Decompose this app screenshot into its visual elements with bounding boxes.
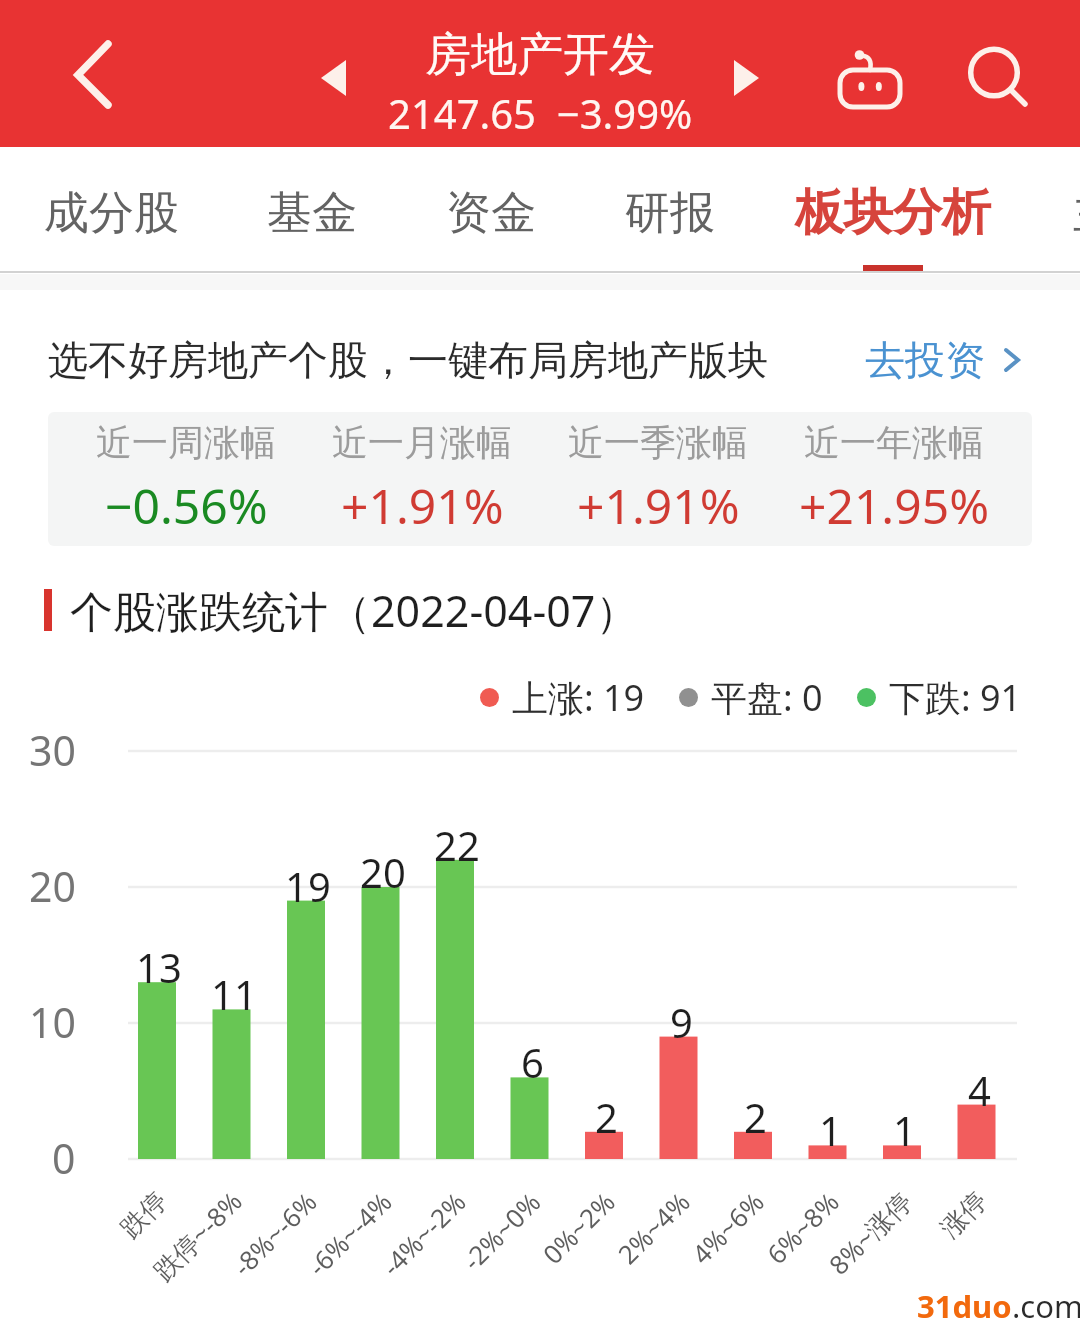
staticText: 板块分析 (795, 182, 991, 244)
staticText: 下跌: 91 (889, 673, 1022, 721)
staticText: +1.91% (341, 473, 504, 538)
staticText: 1 (893, 1103, 916, 1157)
button[interactable]: AI assistant (830, 40, 910, 120)
button[interactable]: 个股涨跌统计（2022-04-07） (44, 580, 639, 640)
staticText: 10 (29, 994, 76, 1050)
staticText: -2%~0% (454, 1184, 548, 1277)
button[interactable]: Back (42, 22, 146, 126)
button[interactable]: 近一周涨幅 (48, 412, 1032, 546)
staticText: −0.56% (105, 473, 268, 538)
staticText: 选不好房地产个股，一键布局房地产版块 (48, 335, 768, 385)
button[interactable]: 资金 (427, 147, 555, 274)
staticText: 成分股 (44, 185, 179, 242)
staticText: 个股涨跌统计（2022-04-07） (70, 581, 639, 640)
staticText: 资金 (446, 185, 536, 242)
button[interactable]: Search (958, 34, 1048, 124)
staticText: 4 (968, 1063, 991, 1117)
staticText: 8%~涨停 (821, 1183, 920, 1282)
staticText: 跌停 (114, 1185, 174, 1245)
staticText: 30 (29, 722, 76, 778)
button[interactable]: 研报 (606, 147, 734, 274)
staticText: 平盘: 0 (711, 673, 823, 721)
staticText: 1 (819, 1103, 842, 1157)
staticText: 31duo (917, 1285, 1012, 1324)
button[interactable]: 平盘: 0 (679, 673, 823, 721)
button[interactable]: 下跌: 91 (857, 673, 1022, 721)
button[interactable]: Next sector (708, 42, 780, 114)
staticText: 2 (595, 1090, 618, 1144)
staticText: 研报 (625, 185, 715, 242)
staticText: 6 (521, 1035, 544, 1089)
button[interactable]: Previous sector (300, 42, 372, 114)
staticText: 去投资 (865, 335, 985, 385)
staticText: 基金 (267, 185, 357, 242)
staticText: 20 (29, 858, 76, 914)
staticText: 2 (744, 1090, 767, 1144)
staticText: +21.95% (799, 473, 990, 538)
staticText: 6%~8% (759, 1184, 846, 1271)
staticText: -4%~-2% (374, 1184, 473, 1283)
staticText: 2147.65 −3.99% (388, 86, 693, 140)
staticText: -6%~-4% (300, 1184, 399, 1283)
staticText: 上涨: 19 (512, 673, 645, 721)
staticText: 19 (285, 859, 331, 913)
button[interactable]: 板块分析 (765, 147, 1021, 274)
staticText: .com (1012, 1285, 1080, 1324)
button[interactable]: 成分股 (15, 147, 207, 274)
staticText: 近一季涨幅 (568, 420, 748, 465)
staticText: 近一年涨幅 (804, 420, 984, 465)
staticText: -8%~-6% (225, 1184, 324, 1283)
staticText: 0 (52, 1130, 76, 1186)
staticText: 近一周涨幅 (96, 420, 276, 465)
staticText: 13 (136, 940, 182, 994)
staticText: 9 (670, 995, 693, 1049)
button[interactable]: 选不好房地产个股，一键布局房地产版块 (0, 318, 1080, 402)
button[interactable]: 主 (1063, 147, 1080, 274)
staticText: 跌停~-8% (145, 1183, 250, 1288)
button[interactable]: 基金 (248, 147, 376, 274)
staticText: 11 (211, 967, 257, 1021)
staticText: 主 (1073, 185, 1080, 242)
staticText: 4%~6% (684, 1184, 771, 1271)
staticText: 20 (360, 845, 406, 899)
staticText: 近一月涨幅 (332, 420, 512, 465)
button[interactable]: 上涨: 19 (480, 673, 645, 721)
staticText: 0%~2% (535, 1184, 622, 1271)
staticText: 22 (434, 818, 480, 872)
staticText: 涨停 (934, 1185, 994, 1245)
staticText: 房地产开发 (425, 26, 655, 84)
staticText: 2%~4% (610, 1184, 697, 1271)
staticText: +1.91% (577, 473, 740, 538)
